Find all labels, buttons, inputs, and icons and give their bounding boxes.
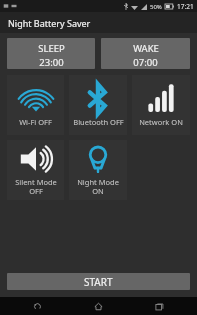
staticText: 50% (150, 3, 162, 11)
staticText: START (84, 275, 113, 289)
button[interactable]: SLEEP (7, 38, 95, 69)
staticText: Night Mode ON (77, 177, 119, 196)
button[interactable]: Back (24, 297, 50, 315)
staticText: Bluetooth OFF (73, 117, 124, 127)
button[interactable]: START (7, 273, 190, 290)
staticText: Night Battery Saver (8, 17, 91, 29)
staticText: 23:00 (39, 56, 64, 69)
staticText: WAKE (133, 42, 159, 55)
button[interactable]: Recents (146, 297, 172, 315)
button[interactable]: Network (132, 75, 190, 135)
staticText: SLEEP (38, 42, 65, 55)
staticText: 07:00 (133, 56, 158, 69)
button[interactable]: Home (85, 297, 111, 315)
button[interactable]: Bluetooth (69, 75, 127, 135)
button[interactable]: WAKE (101, 38, 190, 69)
button[interactable]: Wi-Fi (7, 75, 64, 135)
staticText: Network ON (139, 117, 183, 127)
staticText: Wi-Fi OFF (19, 117, 52, 127)
button[interactable]: Night Mode (69, 140, 127, 200)
button[interactable]: Silent Mode (7, 140, 64, 200)
staticText: Silent Mode OFF (15, 177, 57, 196)
staticText: 17:21 (177, 2, 194, 11)
